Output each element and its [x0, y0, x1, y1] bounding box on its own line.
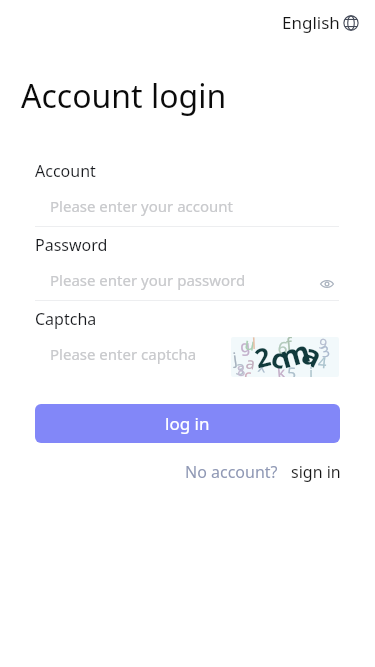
button[interactable]: log in: [35, 404, 340, 443]
staticText: m: [275, 337, 315, 376]
staticText: a: [296, 337, 330, 376]
staticText: k: [276, 362, 287, 377]
staticText: l: [251, 337, 256, 353]
staticText: Please enter your account: [50, 196, 234, 216]
staticText: log in: [165, 412, 210, 435]
button[interactable]: English: [278, 7, 363, 38]
staticText: 5: [286, 362, 297, 377]
other: Show password: [320, 277, 334, 291]
staticText: u: [243, 337, 257, 356]
staticText: c: [267, 338, 291, 377]
button[interactable]: Refresh captcha: [231, 337, 339, 377]
staticText: 9: [317, 337, 330, 354]
staticText: j: [231, 347, 239, 369]
staticText: i: [309, 362, 314, 377]
button[interactable]: Please enter your password: [35, 262, 339, 292]
staticText: English: [282, 11, 340, 34]
staticText: No account?: [185, 461, 278, 483]
staticText: c: [244, 364, 252, 377]
button[interactable]: Show password: [318, 275, 336, 293]
staticText: a: [244, 351, 256, 374]
staticText: f: [285, 337, 293, 355]
staticText: Account: [35, 160, 96, 182]
other: Select language: [343, 15, 359, 31]
button[interactable]: Please enter captcha: [35, 336, 225, 376]
staticText: g: [239, 337, 251, 357]
staticText: sign in: [291, 461, 341, 483]
staticText: 4: [317, 352, 328, 372]
staticText: Captcha: [35, 308, 97, 330]
staticText: Please enter your password: [50, 270, 246, 290]
staticText: 8: [236, 361, 247, 377]
staticText: 3: [319, 340, 332, 362]
staticText: x: [257, 355, 267, 376]
staticText: Please enter captcha: [50, 344, 197, 364]
staticText: 6: [277, 337, 289, 359]
button[interactable]: Please enter your account: [35, 188, 339, 218]
staticText: Account login: [21, 74, 227, 118]
button[interactable]: sign in: [291, 461, 341, 483]
staticText: 3: [235, 359, 246, 377]
staticText: 2: [251, 338, 274, 375]
staticText: Password: [35, 234, 108, 256]
